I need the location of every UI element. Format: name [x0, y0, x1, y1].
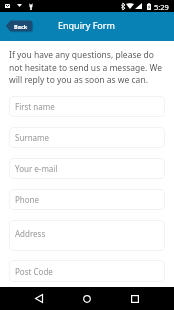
staticText: 5:29	[154, 2, 169, 12]
button[interactable]: Your e-mail	[9, 158, 165, 179]
staticText: Back	[14, 23, 28, 30]
button[interactable]: Back	[24, 287, 54, 310]
staticText: Phone	[15, 194, 40, 205]
staticText: Enquiry Form	[58, 19, 115, 31]
staticText: If you have any questions, please do not…	[9, 49, 165, 85]
staticText: Post Code	[15, 266, 53, 277]
staticText: Your e-mail	[15, 163, 58, 174]
button[interactable]: Surname	[9, 127, 165, 148]
button[interactable]: Address	[9, 220, 165, 251]
button[interactable]: Phone	[9, 189, 165, 210]
button[interactable]: First name	[9, 96, 165, 117]
button[interactable]: Home	[72, 287, 102, 310]
staticText: First name	[15, 101, 55, 112]
button[interactable]: Post Code	[9, 260, 165, 282]
staticText: Address	[15, 228, 46, 239]
button[interactable]: Recent apps	[120, 287, 150, 310]
staticText: Surname	[15, 132, 50, 143]
button[interactable]: Back	[5, 20, 33, 33]
